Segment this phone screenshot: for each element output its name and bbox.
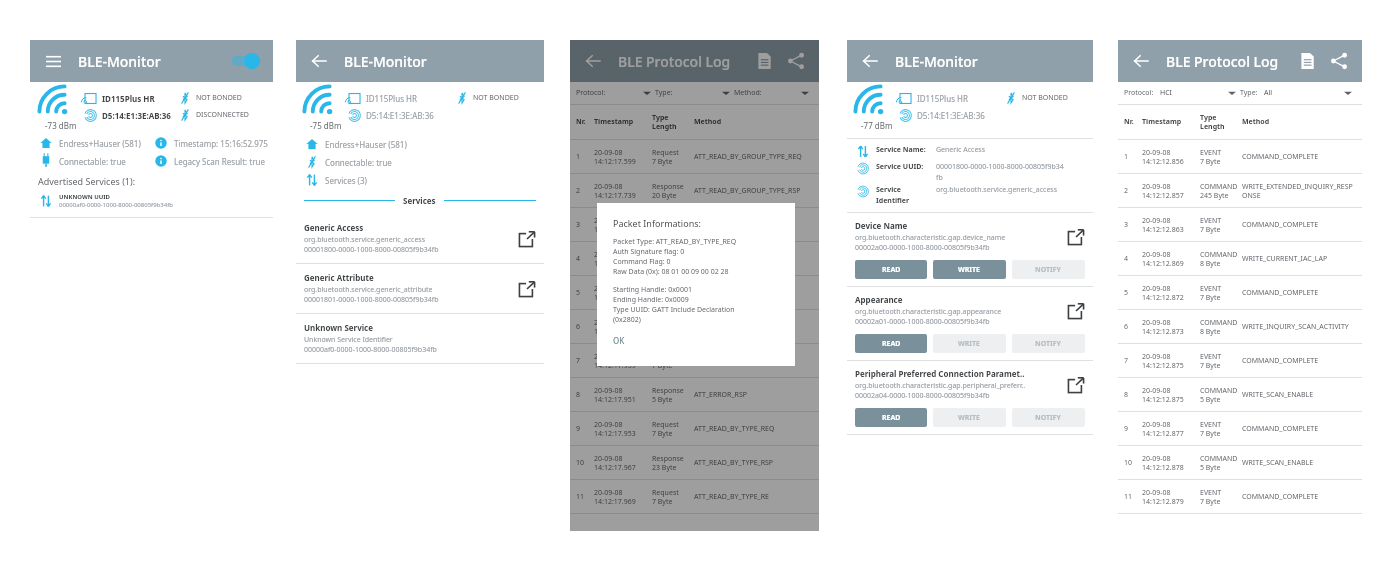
staticText: HCI (1160, 88, 1172, 98)
button[interactable]: READ (855, 334, 927, 353)
button[interactable]: Save log (1292, 46, 1322, 76)
staticText: DISCONNECTED (196, 110, 249, 120)
button[interactable]: 7 (1118, 344, 1362, 377)
button[interactable]: 11 (1118, 480, 1362, 513)
staticText: 9 (576, 424, 594, 434)
staticText: Peripheral Preferred Connection Paramet.… (855, 368, 1025, 379)
staticText: COMMAND 5 Byte (1200, 386, 1242, 404)
button[interactable]: Type: (655, 88, 734, 98)
button[interactable]: 9 (1118, 412, 1362, 445)
staticText: D5:14:E1:3E:AB:36 (366, 110, 434, 121)
button[interactable]: WRITE (933, 408, 1006, 427)
button[interactable]: 8 (570, 378, 819, 411)
button[interactable]: 6 (1118, 310, 1362, 343)
staticText: 00002a04-0000-1000-8000-00805f9b34fb (855, 391, 990, 401)
staticText: Service UUID: (876, 162, 932, 172)
staticText: ATT_READ_BY_TYPE_RE (694, 492, 813, 502)
button[interactable]: Open characteristic (1067, 228, 1085, 246)
button[interactable]: 6 (570, 310, 819, 343)
button[interactable]: WRITE (933, 334, 1006, 353)
staticText: ATT_READ_BY_GROUP_T (694, 220, 813, 230)
button[interactable]: 11 (570, 480, 819, 513)
button[interactable]: Share (781, 46, 811, 76)
staticText: 10 (576, 458, 594, 468)
staticText: Nr. (1124, 117, 1142, 127)
button[interactable]: NOTIFY (1012, 334, 1085, 353)
staticText: ATT_READ_BY_TYPE_REQ (694, 424, 813, 434)
staticText: ID115Plus HR (917, 93, 968, 104)
button[interactable]: Back (304, 46, 334, 76)
button[interactable]: 1 (1118, 140, 1362, 173)
button[interactable]: NOTIFY (1012, 260, 1085, 279)
button[interactable]: 5 (1118, 276, 1362, 309)
button[interactable]: Save log (749, 46, 779, 76)
button[interactable]: READ (855, 260, 927, 279)
button[interactable]: Back (578, 46, 608, 76)
button[interactable]: Scan toggle (225, 49, 261, 73)
button[interactable]: Menu (38, 46, 68, 76)
staticText: Type Length (1200, 113, 1242, 131)
button[interactable]: Generic Access (296, 214, 544, 263)
button[interactable]: OK (613, 335, 633, 350)
staticText: COMMAND_COMPLETE (1242, 152, 1356, 162)
staticText: 00002a00-0000-1000-8000-00805f9b34fb (855, 243, 990, 253)
button[interactable]: Open service (518, 280, 536, 298)
staticText: 20-09-08 14:12:12.877 (1142, 420, 1200, 438)
staticText: 8 (1124, 390, 1142, 400)
button[interactable]: 8 (1118, 378, 1362, 411)
button[interactable]: Open characteristic (1067, 302, 1085, 320)
staticText: 10 (1124, 458, 1142, 468)
staticText: -77 dBm (861, 120, 893, 131)
button[interactable]: Generic Attribute (296, 264, 544, 313)
button[interactable]: WRITE (933, 260, 1006, 279)
staticText: Request 7 Byte (652, 352, 694, 370)
button[interactable]: Open characteristic (1067, 376, 1085, 394)
button[interactable]: 4 (570, 242, 819, 275)
button[interactable]: Back (855, 46, 885, 76)
staticText: Unknown Service Identifier (304, 335, 393, 345)
button[interactable]: Protocol: (576, 88, 655, 98)
staticText: ATT_READ_BY_GROUP_T (694, 254, 813, 264)
staticText: Method: (734, 88, 762, 98)
staticText: BLE-Monitor (895, 52, 978, 71)
staticText: 7 (576, 356, 594, 366)
staticText: Service Identifier (876, 185, 932, 205)
button[interactable]: 3 (1118, 208, 1362, 241)
button[interactable]: READ (855, 408, 927, 427)
staticText: UNKNOWN UUID (59, 193, 111, 201)
staticText: READ (882, 265, 901, 275)
staticText: org.bluetooth.characteristic.gap.device_… (855, 233, 1006, 243)
button[interactable]: Type: (1240, 88, 1356, 98)
staticText: Connectable: true (325, 157, 392, 168)
button[interactable]: Protocol: (1124, 88, 1240, 98)
button[interactable]: Unknown Service (296, 314, 544, 363)
staticText: 6 (1124, 322, 1142, 332)
button[interactable]: 2 (570, 174, 819, 207)
button[interactable]: 7 (570, 344, 819, 377)
staticText: BLE-Monitor (344, 52, 427, 71)
button[interactable]: 1 (570, 140, 819, 173)
button[interactable]: Share (1324, 46, 1354, 76)
button[interactable]: Method: (734, 88, 813, 98)
button[interactable]: 2 (1118, 174, 1362, 207)
button[interactable]: Open service (518, 230, 536, 248)
button[interactable]: 9 (570, 412, 819, 445)
button[interactable]: 4 (1118, 242, 1362, 275)
staticText: EVENT 7 Byte (1200, 420, 1242, 438)
button[interactable]: 10 (1118, 446, 1362, 479)
button[interactable]: 5 (570, 276, 819, 309)
staticText: EVENT 7 Byte (1200, 284, 1242, 302)
staticText: 2 (576, 186, 594, 196)
staticText: org.bluetooth.service.generic_attribute (304, 285, 433, 295)
staticText: (0x2802) (613, 315, 641, 325)
button[interactable]: Back (1126, 46, 1156, 76)
button[interactable]: 3 (570, 208, 819, 241)
staticText: COMMAND_COMPLETE (1242, 356, 1356, 366)
button[interactable]: 10 (570, 446, 819, 479)
staticText: 20-09-08 14:12:12.872 (1142, 284, 1200, 302)
staticText: 20-09-08 14:12:12.873 (1142, 318, 1200, 336)
staticText: Request 7 Byte (652, 216, 694, 234)
staticText: Timestamp: 15:16:52.975 (174, 138, 268, 149)
staticText: 20-09-08 14:12:17.7 (594, 216, 652, 234)
button[interactable]: NOTIFY (1012, 408, 1085, 427)
